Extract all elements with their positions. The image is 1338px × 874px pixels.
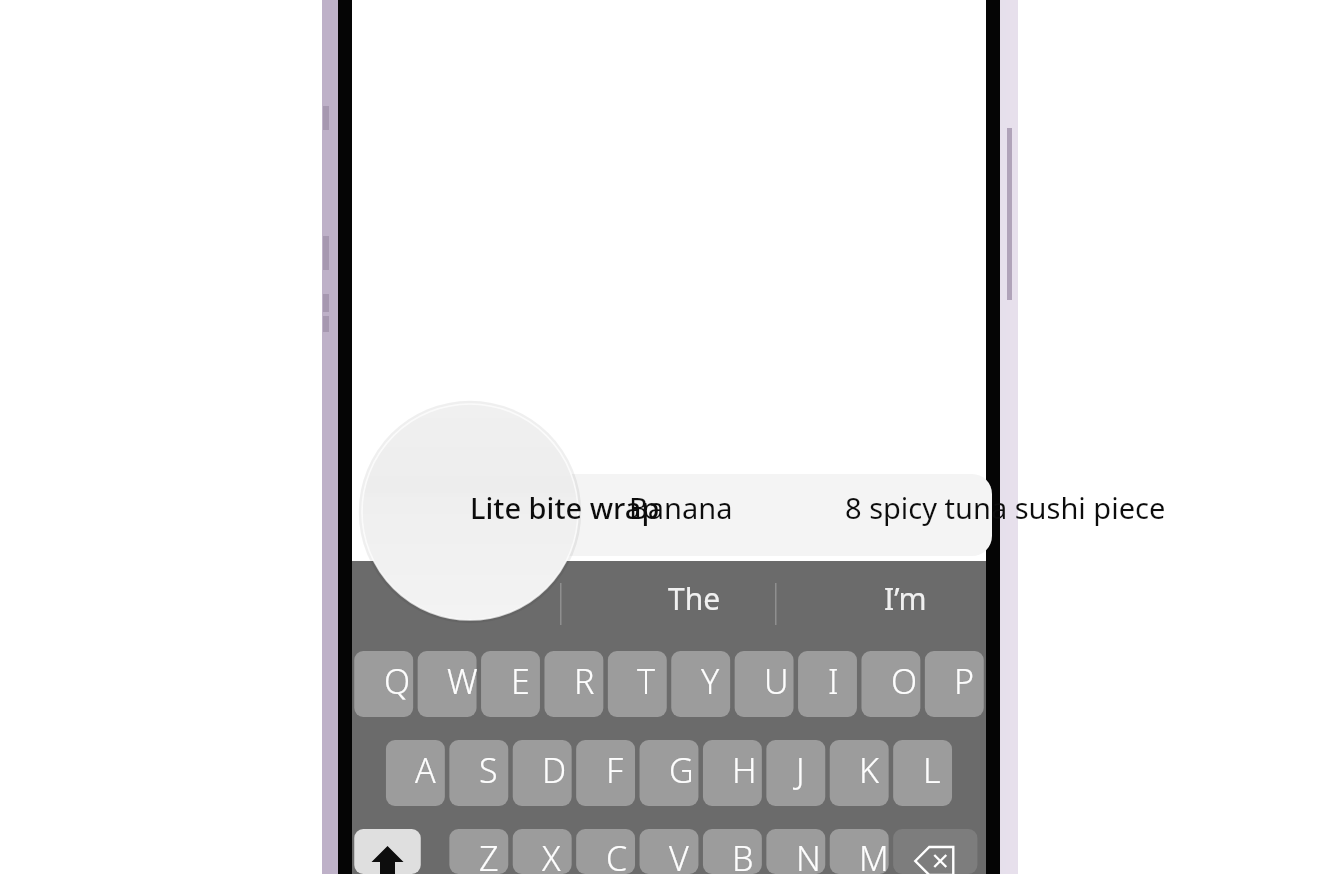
staticText: T <box>637 658 656 704</box>
button[interactable]: U <box>764 658 789 704</box>
staticText: C <box>606 835 628 874</box>
staticText: M <box>859 835 889 874</box>
button[interactable]: N <box>796 835 821 874</box>
staticText: H <box>732 747 757 793</box>
button[interactable]: M <box>859 835 889 874</box>
button[interactable]: W <box>447 658 478 704</box>
button[interactable]: T <box>637 658 656 704</box>
staticText: U <box>764 658 789 704</box>
button[interactable]: Q <box>384 658 411 704</box>
staticText: B <box>732 835 754 874</box>
button[interactable]: D <box>542 747 567 793</box>
button[interactable]: I’m <box>884 578 927 619</box>
button[interactable]: Banana <box>629 488 733 527</box>
staticText: D <box>542 747 567 793</box>
staticText: I’m <box>884 578 927 619</box>
staticText: W <box>447 658 478 704</box>
button[interactable]: S <box>479 747 498 793</box>
staticText: Z <box>479 835 499 874</box>
staticText: J <box>796 747 805 793</box>
staticText: A <box>415 747 436 793</box>
button[interactable]: V <box>669 835 689 874</box>
staticText: E <box>511 658 530 704</box>
button[interactable]: I <box>828 658 839 704</box>
button[interactable]: Y <box>701 658 720 704</box>
button[interactable]: C <box>606 835 628 874</box>
staticText: O <box>891 658 918 704</box>
staticText: The <box>668 578 721 619</box>
staticText: N <box>796 835 821 874</box>
staticText: V <box>669 835 689 874</box>
staticText: S <box>479 747 498 793</box>
staticText: L <box>923 747 941 793</box>
button[interactable]: K <box>859 747 879 793</box>
button[interactable]: Z <box>479 835 499 874</box>
staticText: F <box>606 747 624 793</box>
staticText: Y <box>701 658 720 704</box>
staticText: Banana <box>629 488 733 527</box>
button[interactable]: 8 spicy tuna sushi piece <box>845 488 1166 527</box>
button[interactable]: R <box>574 658 595 704</box>
button[interactable]: H <box>732 747 757 793</box>
staticText: I <box>828 658 839 704</box>
button[interactable]: F <box>606 747 624 793</box>
staticText: X <box>542 835 561 874</box>
staticText: G <box>669 747 694 793</box>
button[interactable]: L <box>923 747 941 793</box>
staticText: P <box>954 658 975 704</box>
button[interactable]: J <box>796 747 805 793</box>
staticText: R <box>574 658 595 704</box>
staticText: K <box>859 747 879 793</box>
button[interactable]: Magnified suggestion Lite bite wrap <box>470 488 660 527</box>
staticText: Q <box>384 658 411 704</box>
button[interactable]: E <box>511 658 530 704</box>
button[interactable]: A <box>415 747 436 793</box>
button[interactable]: P <box>954 658 975 704</box>
button[interactable]: O <box>891 658 918 704</box>
staticText: 8 spicy tuna sushi piece <box>845 488 1166 527</box>
button[interactable]: X <box>542 835 561 874</box>
button[interactable]: The <box>668 578 721 619</box>
staticText: Lite bite wrap <box>470 488 660 527</box>
button[interactable]: G <box>669 747 694 793</box>
button[interactable]: B <box>732 835 754 874</box>
